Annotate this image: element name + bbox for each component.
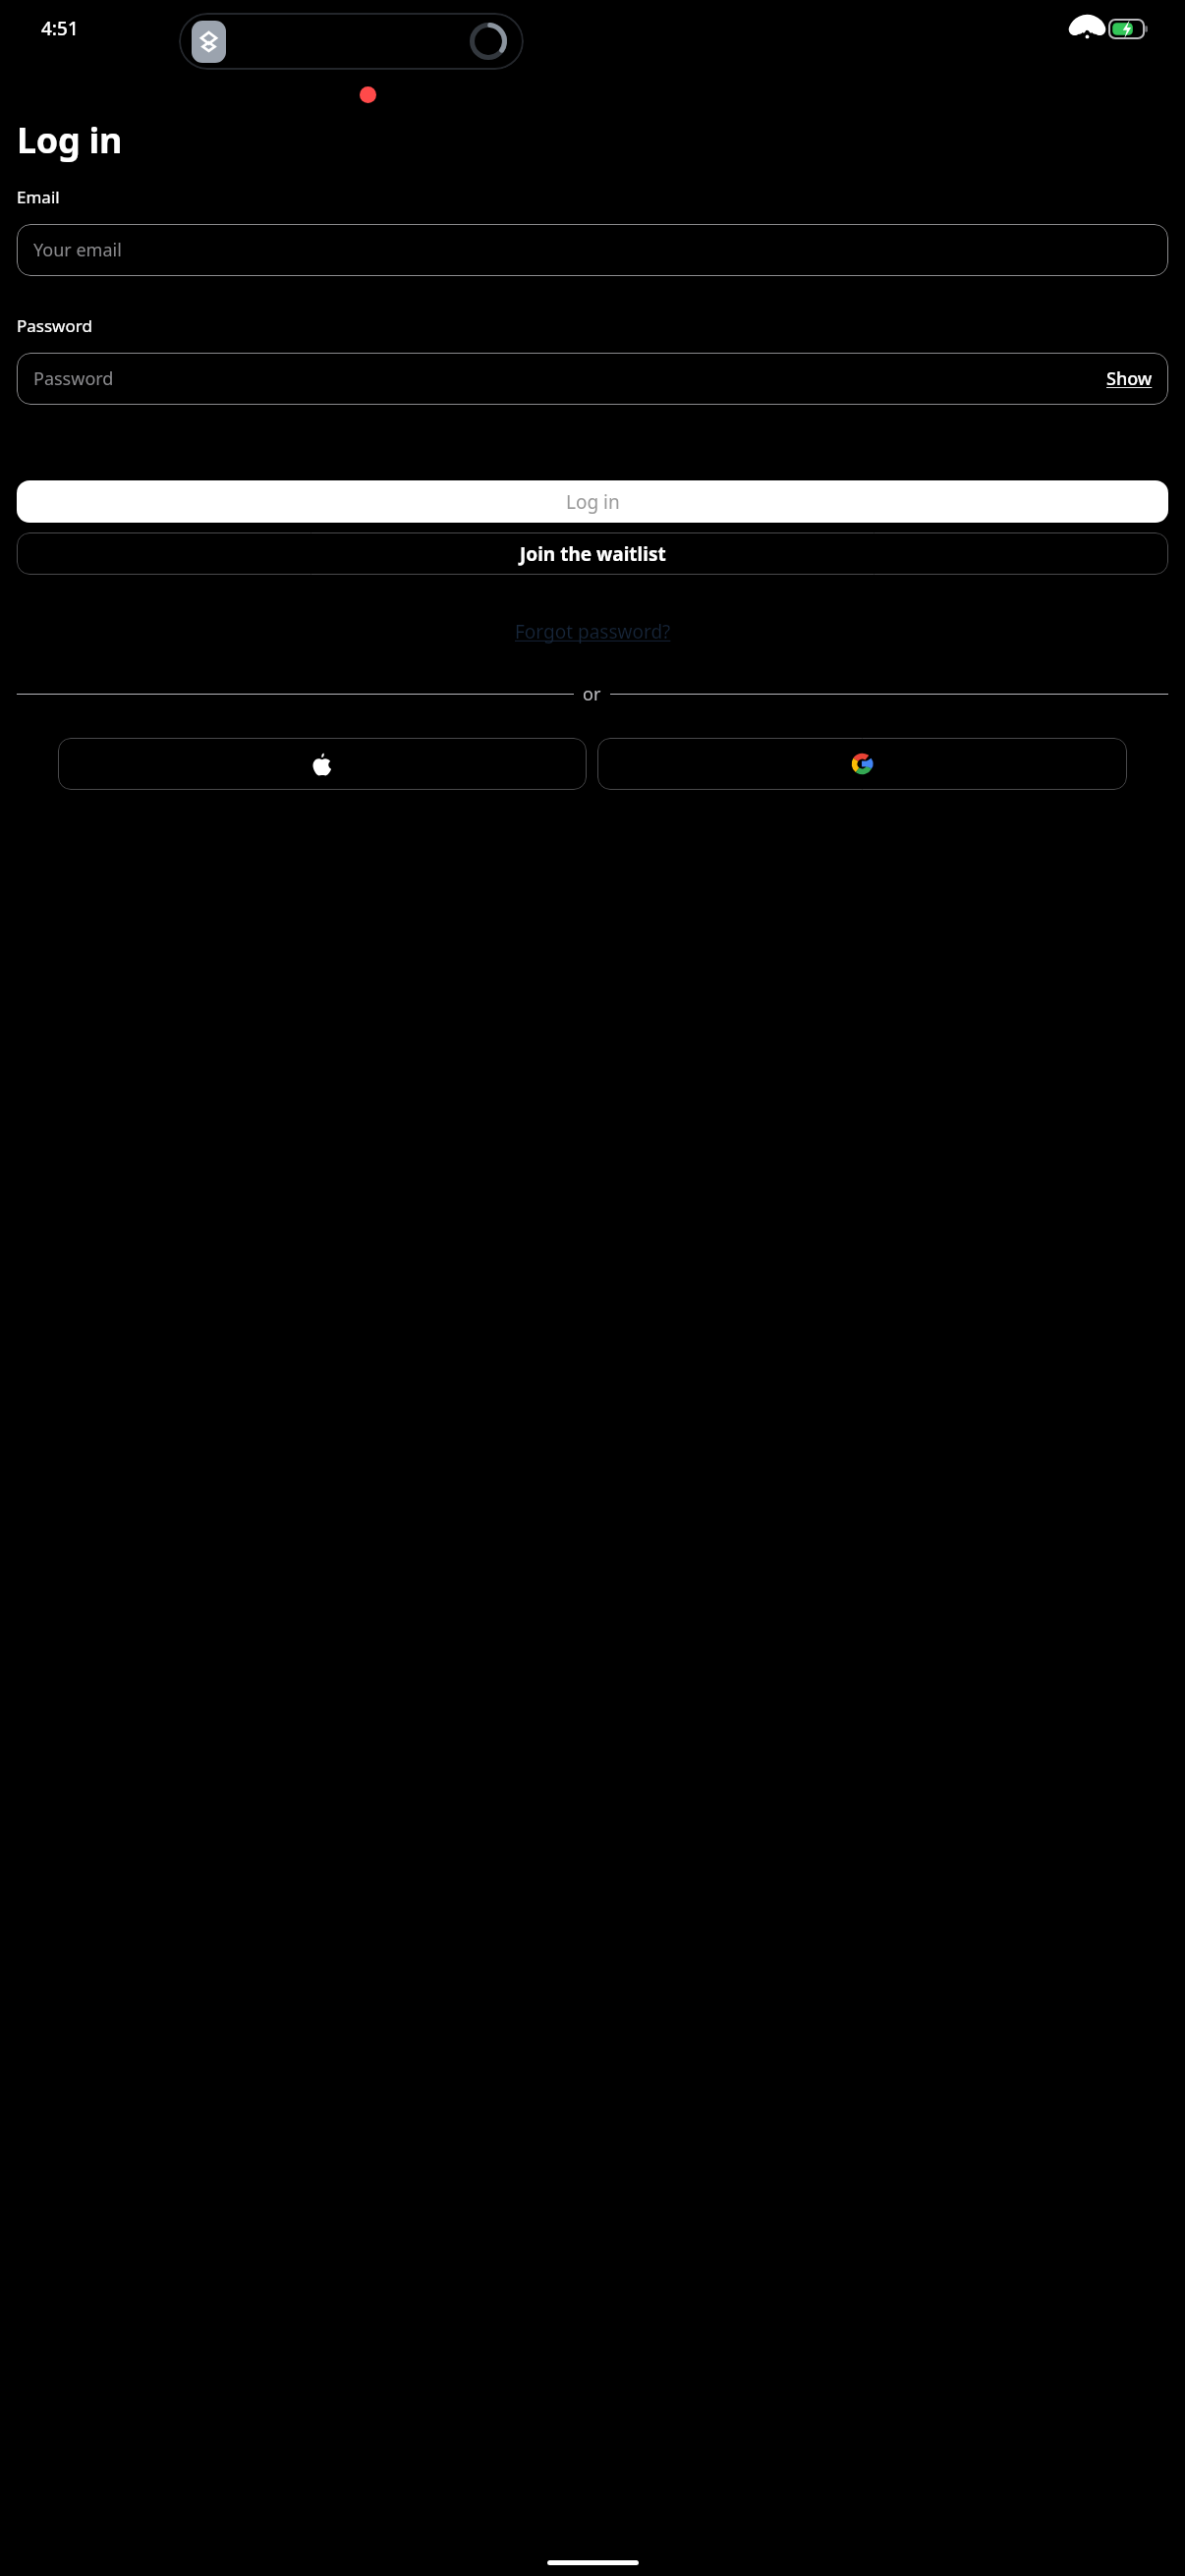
staticText: Log in xyxy=(17,116,123,164)
staticText: Password xyxy=(33,366,114,391)
button[interactable]: Log in xyxy=(17,480,1168,523)
staticText: 4:51 xyxy=(41,16,79,41)
button[interactable]: Show xyxy=(1106,366,1153,391)
button[interactable]: Forgot password? xyxy=(515,619,671,644)
staticText: Email xyxy=(17,186,60,208)
button[interactable]: Join the waitlist xyxy=(17,532,1168,575)
button[interactable]: Sign in with Apple xyxy=(58,738,587,790)
staticText: or xyxy=(583,682,601,706)
staticText: Join the waitlist xyxy=(520,541,666,567)
staticText: Show xyxy=(1106,366,1153,391)
staticText: Password xyxy=(17,314,92,337)
staticText: Your email xyxy=(33,238,122,262)
button[interactable]: Your email xyxy=(17,224,1168,276)
staticText: Log in xyxy=(566,489,620,515)
button[interactable]: Password xyxy=(33,366,1106,391)
staticText: Forgot password? xyxy=(515,619,671,644)
button[interactable]: Sign in with Google xyxy=(597,738,1127,790)
